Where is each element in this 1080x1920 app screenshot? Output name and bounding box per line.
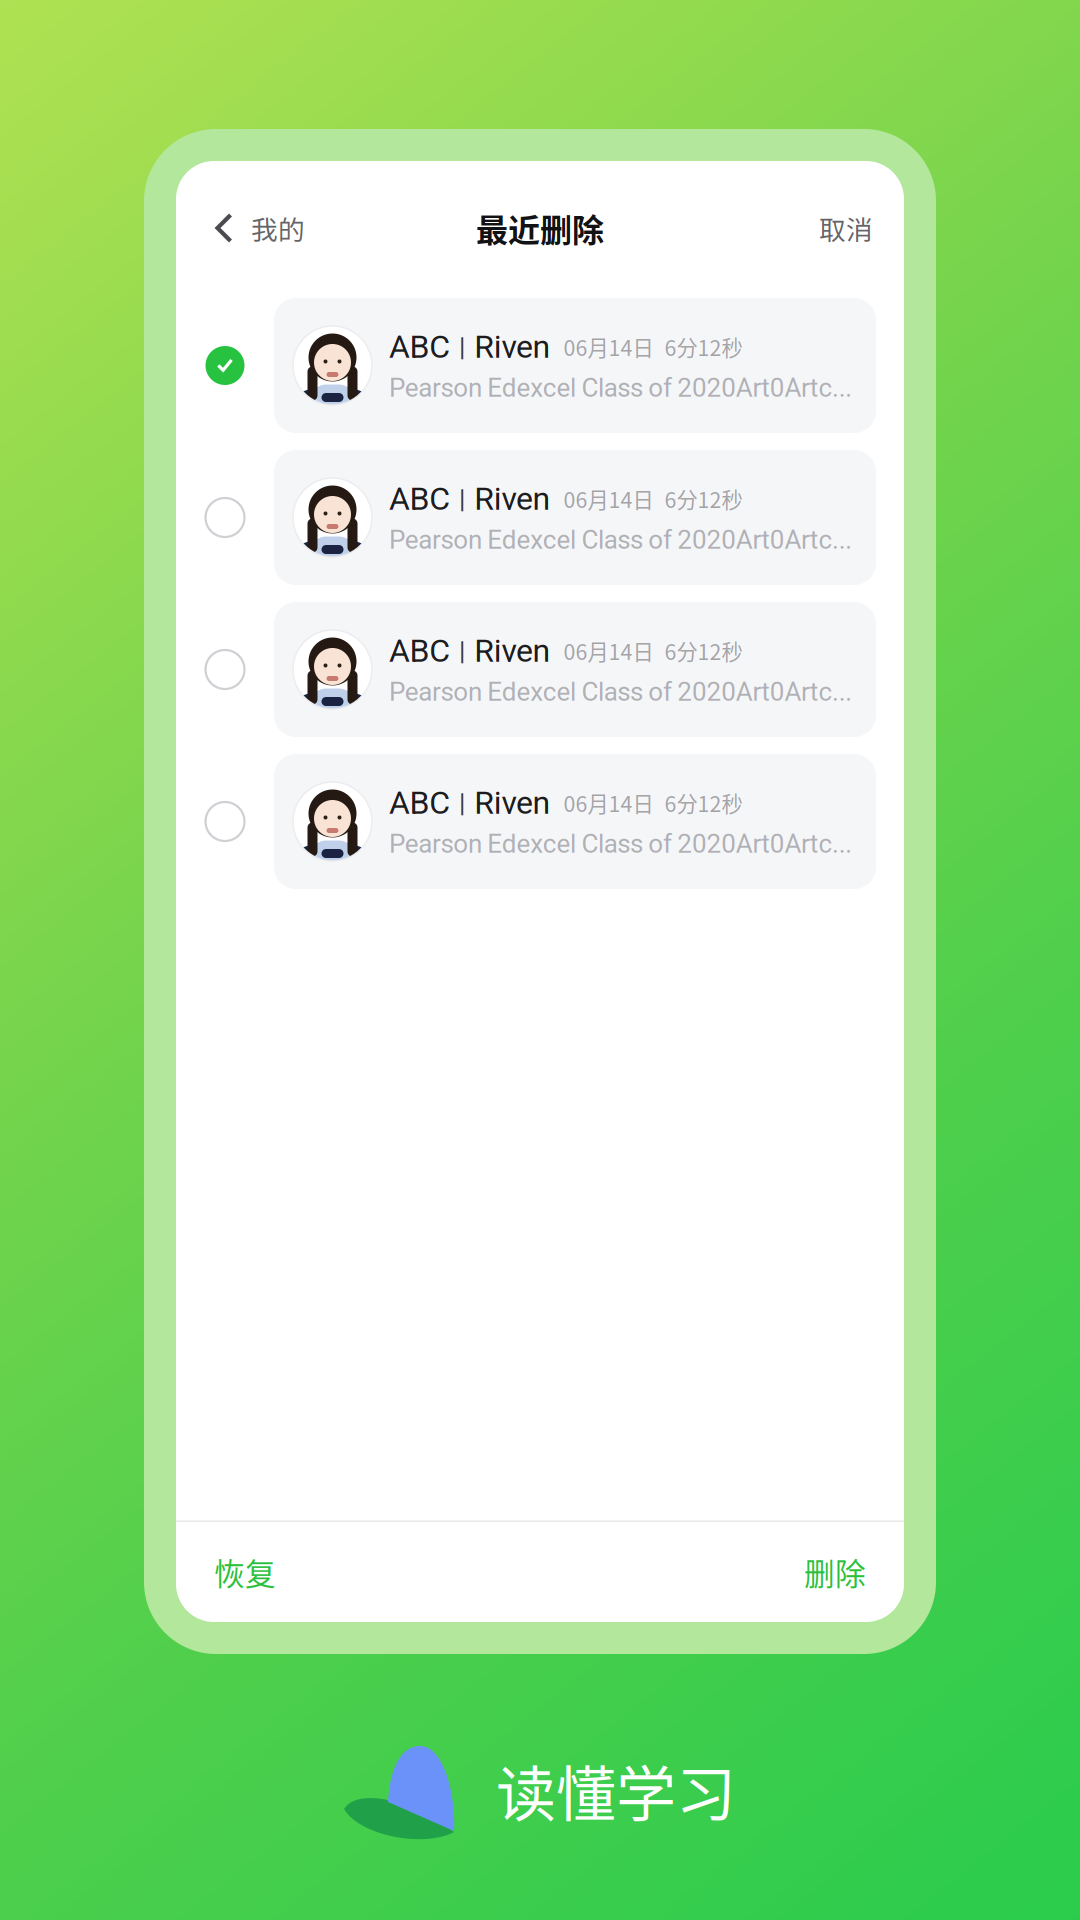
staticText: 取消 <box>819 209 873 247</box>
button[interactable]: 删除 <box>804 1524 904 1620</box>
staticText: 删除 <box>804 1550 866 1594</box>
staticText: 丨 <box>450 481 474 516</box>
staticText: Pearson Edexcel Class of 2020Art0Artc... <box>389 524 852 555</box>
staticText: ABC <box>389 480 450 517</box>
staticText: 丨 <box>450 785 474 820</box>
staticText: Pearson Edexcel Class of 2020Art0Artc... <box>389 372 852 403</box>
staticText: 恢复 <box>214 1550 276 1594</box>
button[interactable]: ABC <box>274 602 876 737</box>
staticText: Pearson Edexcel Class of 2020Art0Artc... <box>389 828 852 859</box>
button[interactable]: 我的 <box>176 193 305 263</box>
staticText: Riven <box>474 632 551 669</box>
staticText: 06月14日 <box>564 483 654 514</box>
staticText: Pearson Edexcel Class of 2020Art0Artc... <box>389 676 852 707</box>
staticText: Riven <box>474 328 551 365</box>
button[interactable]: ABC <box>274 754 876 889</box>
staticText: 丨 <box>450 329 474 364</box>
staticText: Riven <box>474 784 551 821</box>
button[interactable]: Selected <box>176 298 274 433</box>
staticText: 6分12秒 <box>665 483 743 514</box>
button[interactable]: Select <box>176 450 274 585</box>
button[interactable]: Select <box>176 754 274 889</box>
staticText: 6分12秒 <box>665 635 743 666</box>
button[interactable]: 恢复 <box>176 1524 276 1620</box>
staticText: 06月14日 <box>564 787 654 818</box>
button[interactable]: Select <box>176 602 274 737</box>
staticText: ABC <box>389 328 450 365</box>
staticText: 最近删除 <box>476 205 604 251</box>
staticText: 我的 <box>251 209 305 247</box>
staticText: 06月14日 <box>564 331 654 362</box>
staticText: 6分12秒 <box>665 787 743 818</box>
staticText: ABC <box>389 632 450 669</box>
staticText: 6分12秒 <box>665 331 743 362</box>
staticText: 06月14日 <box>564 635 654 666</box>
button[interactable]: 取消 <box>819 193 904 263</box>
staticText: ABC <box>389 784 450 821</box>
staticText: 丨 <box>450 633 474 668</box>
button[interactable]: ABC <box>274 450 876 585</box>
staticText: Riven <box>474 480 551 517</box>
staticText: 读懂学习 <box>496 1747 736 1833</box>
button[interactable]: ABC <box>274 298 876 433</box>
